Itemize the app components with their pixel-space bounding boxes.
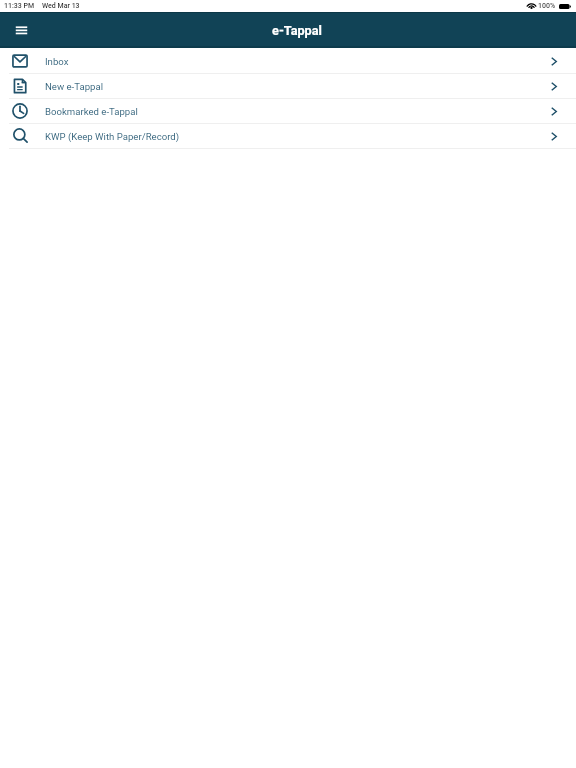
button[interactable]: New e-Tappal	[0, 74, 576, 98]
staticText: Wed Mar 13	[42, 2, 80, 10]
button[interactable]: Inbox	[0, 49, 576, 73]
staticText: KWP (Keep With Paper/Record)	[45, 131, 180, 142]
staticText: 11:33 PM	[4, 2, 35, 10]
button[interactable]: KWP (Keep With Paper/Record)	[0, 124, 576, 148]
button[interactable]: Open navigation menu	[10, 19, 33, 42]
staticText: 100%	[538, 2, 556, 10]
button[interactable]: Bookmarked e-Tappal	[0, 99, 576, 123]
staticText: Inbox	[45, 56, 69, 67]
staticText: New e-Tappal	[45, 81, 103, 92]
staticText: e-Tappal	[272, 23, 322, 38]
staticText: Bookmarked e-Tappal	[45, 106, 138, 117]
